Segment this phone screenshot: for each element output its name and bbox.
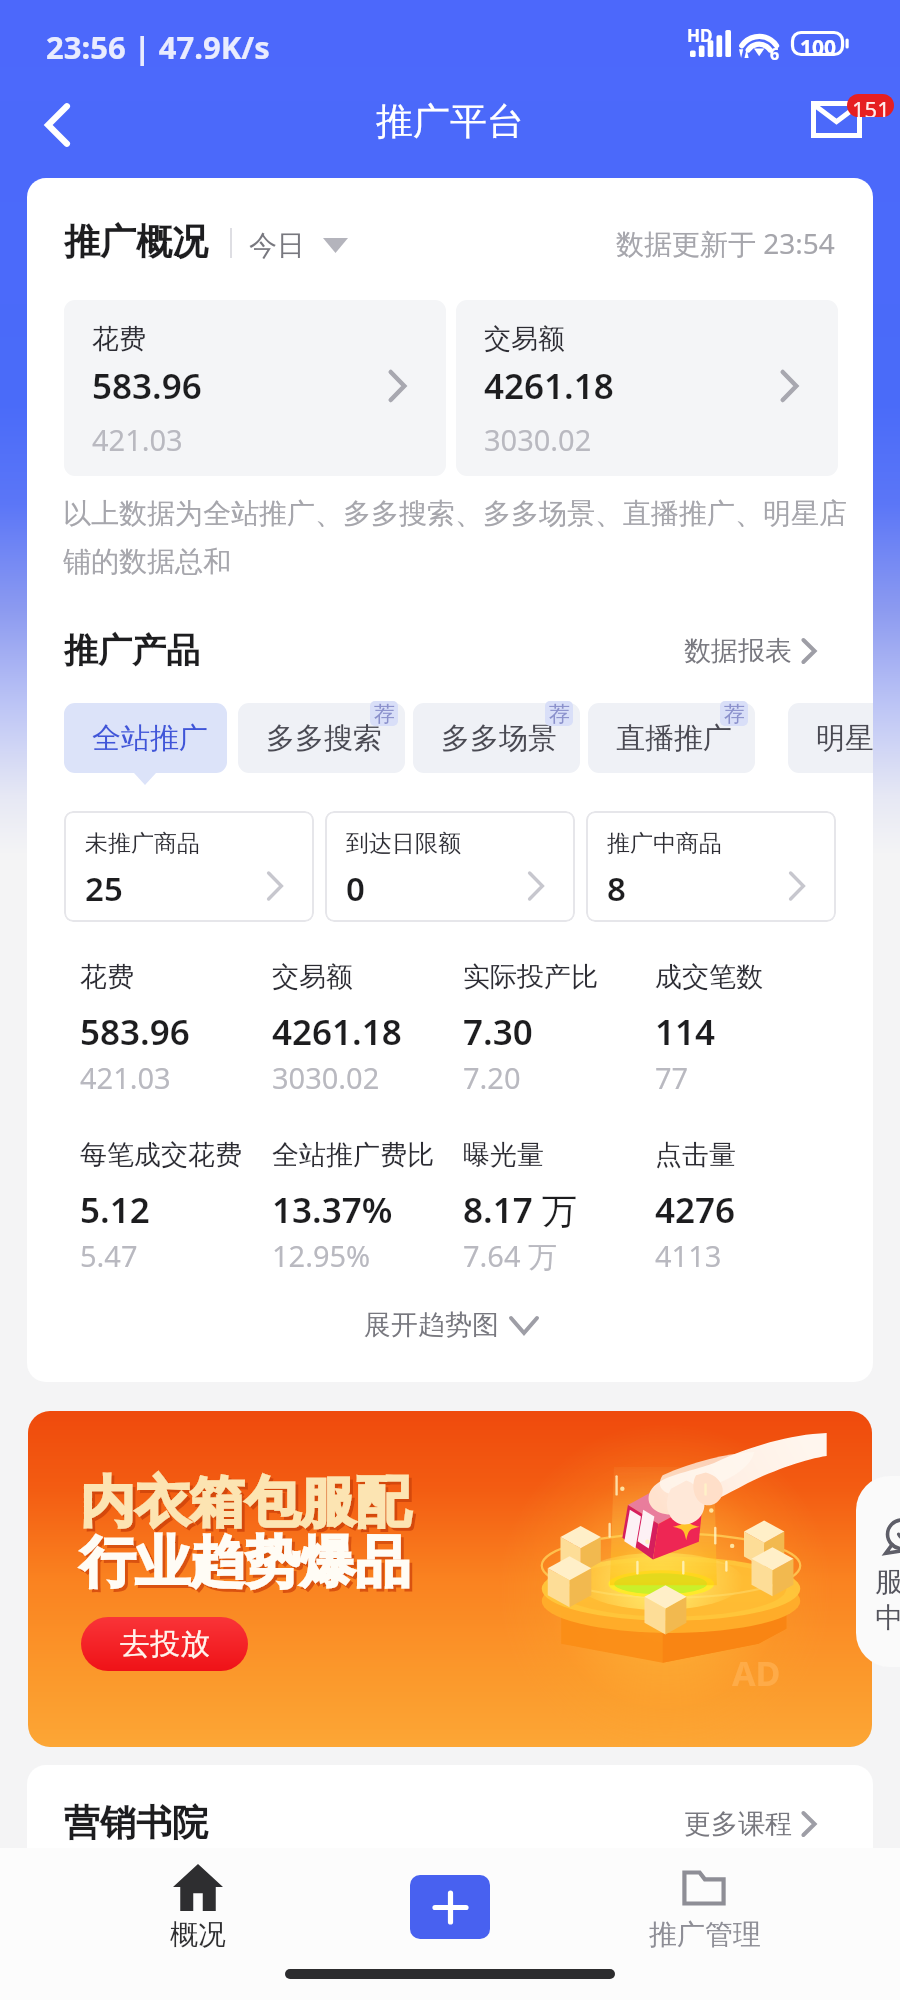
button[interactable]: 直播推广 — [588, 703, 755, 773]
staticText: 营销书院 — [64, 1800, 208, 1845]
staticText: 交易额 — [484, 322, 565, 356]
staticText: 花费 — [92, 322, 146, 356]
staticText: 77 — [655, 1058, 689, 1097]
staticText: 实际投产比 — [463, 960, 598, 994]
staticText: 以上数据为全站推广、多多搜索、多多场景、直播推广、明星店铺的数据总和 — [63, 496, 865, 579]
staticText: 今日 — [249, 228, 305, 263]
button[interactable]: 多多场景 — [413, 703, 580, 773]
staticText: 花费 — [80, 960, 134, 994]
staticText: 荐 — [549, 701, 570, 726]
staticText: 583.96 — [92, 362, 202, 410]
staticText: 到达日限额 — [346, 829, 461, 858]
staticText: 推广概况 — [64, 219, 208, 264]
staticText: 4261.18 — [272, 1008, 402, 1056]
button[interactable]: 花费 — [64, 300, 446, 476]
staticText: 明星 — [816, 720, 873, 757]
staticText: 未推广商品 — [85, 829, 200, 858]
staticText: 内衣箱包服配 — [83, 1471, 413, 1540]
button[interactable]: 推广管理 — [640, 1854, 770, 1954]
staticText: 每笔成交花费 — [80, 1138, 242, 1172]
staticText: 曝光量 — [463, 1138, 544, 1172]
staticText: 行业趋势爆品 — [80, 1528, 410, 1597]
button[interactable]: 明星 — [788, 703, 873, 773]
staticText: 3030.02 — [272, 1058, 380, 1097]
staticText: 5.47 — [80, 1236, 138, 1275]
staticText: 展开趋势图 — [364, 1308, 499, 1342]
staticText: 5.12 — [80, 1186, 150, 1234]
staticText: 12.95% — [272, 1236, 371, 1275]
staticText: 7.64 万 — [463, 1236, 558, 1276]
staticText: 更多课程 — [684, 1807, 792, 1841]
button[interactable]: 去投放 — [81, 1617, 248, 1671]
staticText: 3030.02 — [484, 420, 592, 459]
staticText: 583.96 — [80, 1008, 190, 1056]
staticText: 8.17 万 — [463, 1186, 577, 1234]
staticText: 点击量 — [655, 1138, 736, 1172]
button[interactable]: 未推广商品 — [64, 811, 314, 922]
staticText: 数据更新于 23:54 — [616, 224, 835, 262]
staticText: 成交笔数 — [655, 960, 763, 994]
staticText: 421.03 — [80, 1058, 171, 1097]
staticText: 推广产品 — [64, 629, 200, 672]
button[interactable]: 概况 — [138, 1854, 258, 1954]
staticText: 荐 — [724, 701, 745, 726]
button[interactable]: 推广中商品 — [586, 811, 836, 922]
staticText: 25 — [85, 866, 123, 911]
staticText: 421.03 — [92, 420, 183, 459]
button[interactable]: 多多搜索 — [238, 703, 405, 773]
staticText: 全站推广费比 — [272, 1138, 434, 1172]
button[interactable]: Back — [18, 92, 88, 156]
staticText: 全站推广 — [92, 720, 208, 757]
staticText: 0 — [346, 866, 365, 911]
staticText: 直播推广 — [616, 720, 732, 757]
staticText: 多多搜索 — [266, 720, 382, 757]
button[interactable]: 服务中心 — [856, 1476, 900, 1667]
staticText: 中 — [875, 1600, 900, 1635]
staticText: 数据报表 — [684, 634, 792, 668]
staticText: 4276 — [655, 1186, 736, 1234]
staticText: 内衣箱包服配 — [80, 1468, 410, 1537]
staticText: 100 — [800, 33, 837, 62]
button[interactable]: 到达日限额 — [325, 811, 575, 922]
button[interactable]: AD — [28, 1411, 872, 1747]
staticText: 6 — [770, 43, 780, 65]
staticText: 114 — [655, 1008, 716, 1056]
staticText: 4261.18 — [484, 362, 614, 410]
staticText: 多多场景 — [441, 720, 557, 757]
staticText: 23:56 | 47.9K/s — [46, 26, 270, 68]
staticText: HD — [687, 24, 713, 47]
staticText: 151 — [852, 94, 890, 117]
staticText: 推广中商品 — [607, 829, 722, 858]
staticText: 概况 — [170, 1917, 226, 1952]
button[interactable]: 全站推广 — [64, 703, 227, 773]
staticText: 推广平台 — [376, 98, 524, 145]
staticText: AD — [732, 1650, 781, 1696]
staticText: 4113 — [655, 1236, 722, 1275]
staticText: 行业趋势爆品 — [83, 1531, 413, 1600]
staticText: 交易额 — [272, 960, 353, 994]
staticText: 推广管理 — [649, 1917, 761, 1952]
staticText: 8 — [607, 866, 626, 911]
staticText: 7.20 — [463, 1058, 521, 1097]
button[interactable]: 新建推广 — [410, 1875, 490, 1939]
staticText: 13.37% — [272, 1186, 393, 1234]
button[interactable]: 数据报表 — [684, 634, 816, 668]
staticText: 荐 — [374, 701, 395, 726]
staticText: 7.30 — [463, 1008, 533, 1056]
button[interactable]: 今日 — [249, 228, 348, 263]
staticText: 服 — [875, 1564, 900, 1599]
button[interactable]: Messages — [800, 88, 900, 150]
button[interactable]: 展开趋势图 — [27, 1308, 873, 1342]
button[interactable]: 交易额 — [456, 300, 838, 476]
button[interactable]: 更多课程 — [684, 1807, 816, 1841]
staticText: 去投放 — [120, 1625, 210, 1663]
